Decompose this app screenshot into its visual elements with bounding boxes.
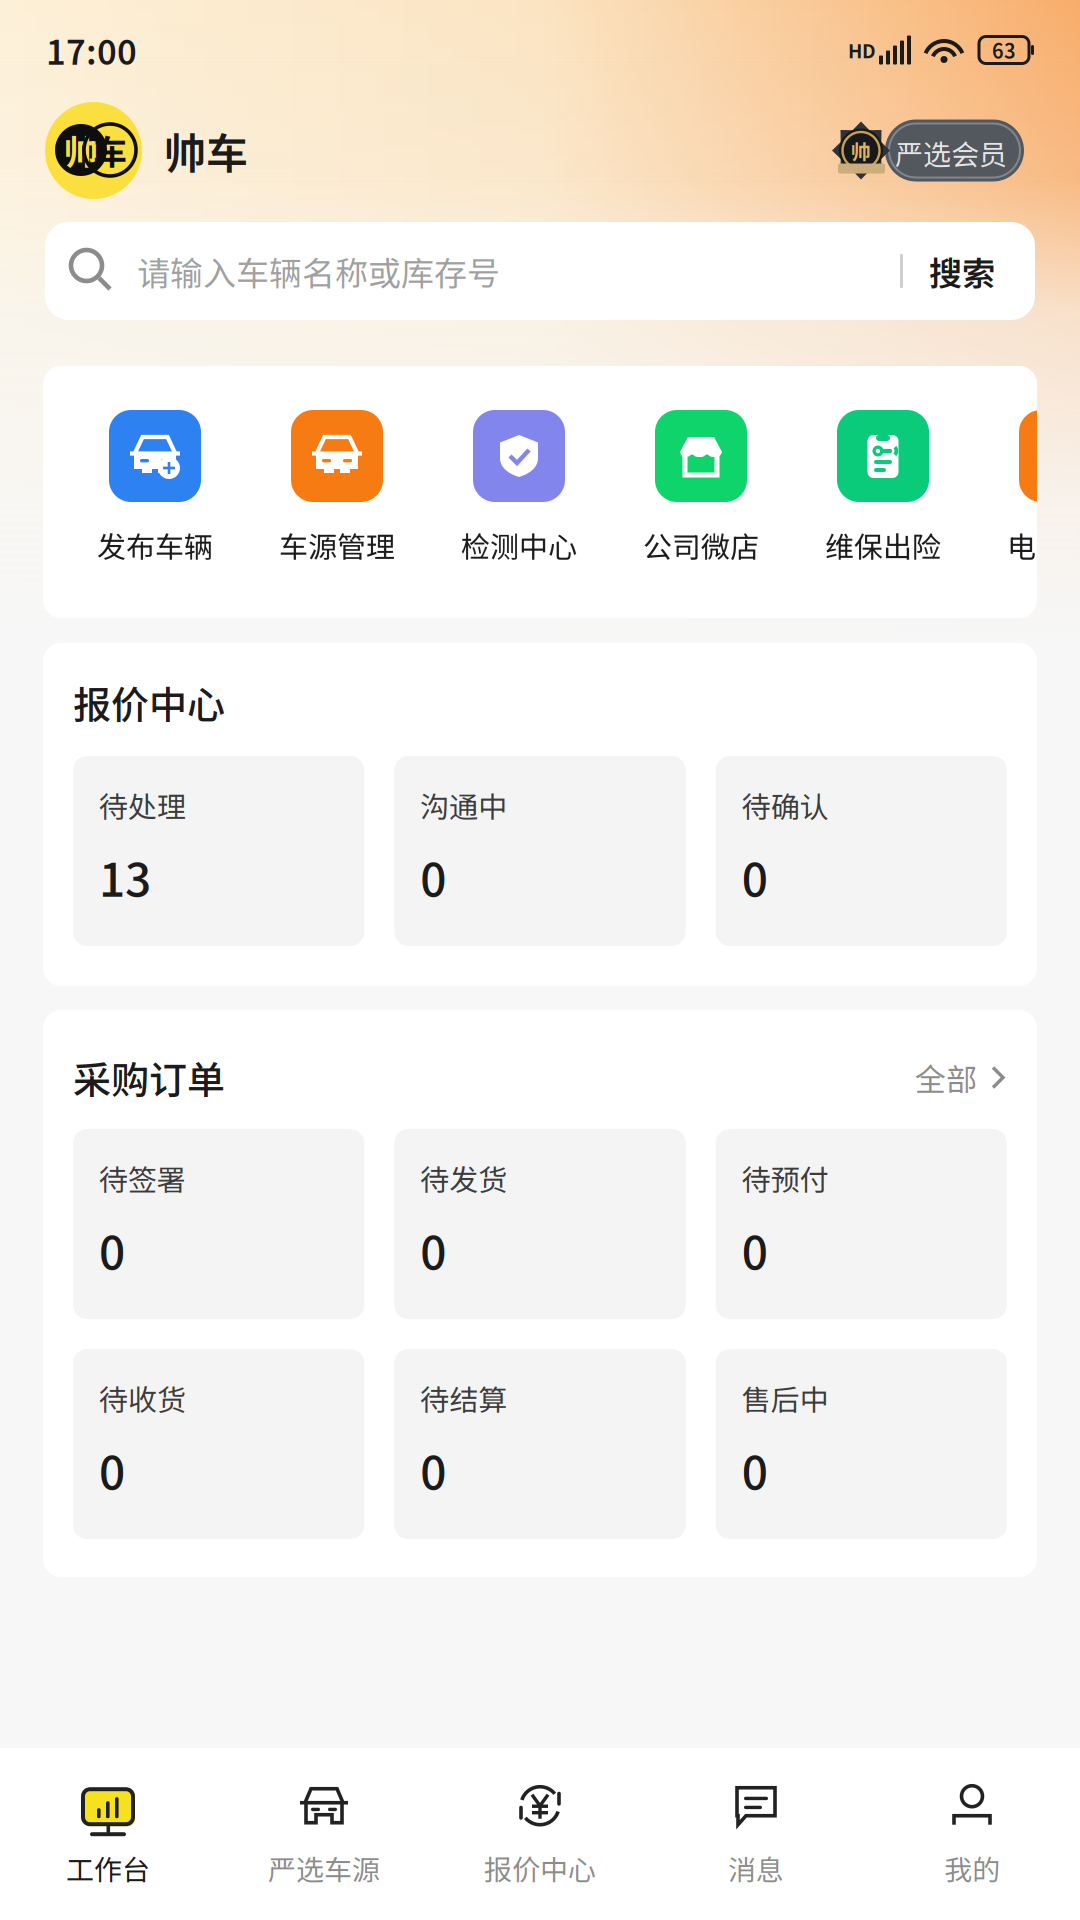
staticText: 帅	[64, 125, 98, 175]
staticText: 报价中心	[484, 1848, 596, 1888]
staticText: 车源管理	[279, 524, 395, 566]
button[interactable]: 维保出险	[792, 410, 974, 566]
staticText: 采购订单	[73, 1050, 225, 1105]
button[interactable]: 待签署	[73, 1129, 364, 1319]
staticText: 维保出险	[825, 524, 941, 566]
staticText: 待确认	[742, 784, 829, 826]
staticText: 售后中	[742, 1377, 829, 1419]
button[interactable]: 报价中心	[432, 1748, 648, 1920]
staticText: 沟通中	[420, 784, 507, 826]
staticText: 0	[420, 843, 446, 910]
staticText: 工作台	[66, 1848, 150, 1888]
staticText: 搜索	[929, 247, 995, 295]
button[interactable]: 待处理	[73, 756, 364, 946]
staticText: 0	[742, 843, 768, 910]
staticText: 待收货	[99, 1377, 186, 1419]
staticText: 电子合同	[1007, 524, 1080, 566]
staticText: 0	[99, 1436, 125, 1503]
button[interactable]: 待发货	[394, 1129, 686, 1319]
button[interactable]: 公司微店	[610, 410, 792, 566]
button[interactable]: 检测中心	[428, 410, 610, 566]
button[interactable]: 待预付	[716, 1129, 1007, 1319]
button[interactable]: 消息	[648, 1748, 864, 1920]
staticText: 待处理	[99, 784, 186, 826]
staticText: 消息	[728, 1848, 784, 1888]
staticText: 车	[93, 125, 127, 175]
button[interactable]: 电子合同	[974, 410, 1080, 566]
staticText: 0	[742, 1216, 768, 1283]
staticText: 请输入车辆名称或库存号	[137, 247, 500, 295]
staticText: 帅车	[164, 120, 248, 181]
staticText: 检测中心	[461, 524, 577, 566]
button[interactable]: 待收货	[73, 1349, 364, 1539]
staticText: 0	[99, 1216, 125, 1283]
staticText: 待结算	[420, 1377, 507, 1419]
button[interactable]: 全部	[915, 1055, 1007, 1100]
staticText: 0	[420, 1216, 446, 1283]
button[interactable]: 严选车源	[216, 1748, 432, 1920]
staticText: 严选车源	[268, 1848, 380, 1888]
button[interactable]: 严选会员	[832, 119, 1025, 181]
staticText: 公司微店	[643, 524, 759, 566]
staticText: 我的	[944, 1848, 1000, 1888]
staticText: 17:00	[46, 25, 137, 75]
staticText: 待签署	[99, 1157, 186, 1199]
staticText: 待发货	[420, 1157, 507, 1199]
button[interactable]: 车源管理	[246, 410, 428, 566]
staticText: 帅	[851, 136, 871, 165]
staticText: 报价中心	[73, 675, 225, 730]
staticText: 发布车辆	[97, 524, 213, 566]
staticText: 严选会员	[895, 132, 1007, 173]
staticText: 全部	[915, 1055, 977, 1100]
staticText: 13	[99, 843, 151, 910]
staticText: 待预付	[742, 1157, 829, 1199]
button[interactable]: 工作台	[0, 1748, 216, 1920]
button[interactable]: 待确认	[716, 756, 1007, 946]
staticText: HD	[848, 36, 876, 64]
staticText: 63	[992, 35, 1016, 64]
button[interactable]: 待结算	[394, 1349, 686, 1539]
staticText: 0	[742, 1436, 768, 1503]
button[interactable]: 售后中	[716, 1349, 1007, 1539]
button[interactable]: 沟通中	[394, 756, 686, 946]
button[interactable]: 发布车辆	[64, 410, 246, 566]
button[interactable]: 请输入车辆名称或库存号	[45, 222, 1035, 320]
staticText: 0	[420, 1436, 446, 1503]
button[interactable]: 我的	[864, 1748, 1080, 1920]
